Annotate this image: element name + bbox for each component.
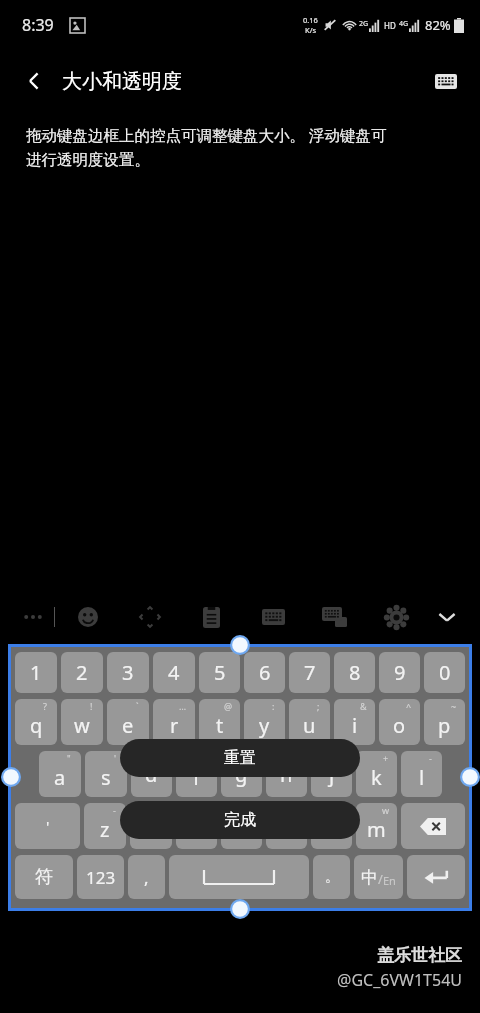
button[interactable]: …: [153, 699, 195, 745]
button[interactable]: 2: [61, 652, 103, 693]
staticText: 2G: [359, 19, 369, 29]
button[interactable]: Emoji: [67, 596, 109, 638]
button[interactable]: 符: [15, 855, 73, 899]
button[interactable]: ?: [15, 699, 57, 745]
button[interactable]: g: [221, 751, 262, 797]
button[interactable]: ^: [379, 699, 420, 745]
button[interactable]: -: [401, 751, 442, 797]
button[interactable]: -: [84, 803, 126, 849]
button[interactable]: Settings: [375, 596, 417, 638]
button[interactable]: 完成: [120, 801, 360, 839]
button[interactable]: ~: [424, 699, 465, 745]
staticText: 中: [361, 867, 378, 888]
button[interactable]: 0: [424, 652, 465, 693]
button[interactable]: Keyboard layout: [252, 596, 294, 638]
button[interactable]: Resize left: [1, 767, 21, 787]
button[interactable]: w: [356, 803, 397, 849]
button[interactable]: x: [130, 803, 172, 849]
button[interactable]: 3: [107, 652, 149, 693]
button[interactable]: _: [176, 751, 217, 797]
staticText: @GC_6VW1T54U: [337, 969, 462, 991]
button[interactable]: c: [176, 803, 217, 849]
staticText: 3: [122, 659, 134, 686]
staticText: ,: [144, 866, 149, 889]
button[interactable]: 6: [244, 652, 285, 693]
button[interactable]: Move keyboard: [129, 596, 171, 638]
button[interactable]: ': [85, 751, 127, 797]
staticText: 进行透明度设置。: [26, 150, 150, 170]
button[interactable]: [169, 855, 309, 899]
staticText: j: [329, 761, 335, 788]
button[interactable]: Hide keyboard: [426, 596, 468, 638]
staticText: 6: [259, 659, 271, 686]
button[interactable]: Clipboard: [190, 596, 232, 638]
staticText: y: [259, 712, 270, 739]
staticText: l: [419, 764, 425, 791]
staticText: 符: [35, 866, 53, 889]
staticText: ~: [451, 700, 457, 712]
staticText: ^: [406, 700, 412, 712]
staticText: 7: [304, 659, 316, 686]
staticText: ;: [317, 700, 320, 712]
staticText: f: [193, 764, 200, 791]
staticText: ?: [43, 700, 47, 712]
staticText: !: [90, 700, 93, 712]
staticText: 重置: [224, 748, 256, 768]
staticText: +: [383, 752, 389, 764]
button[interactable]: 4: [153, 652, 195, 693]
button[interactable]: 7: [289, 652, 330, 693]
button[interactable]: b: [266, 803, 307, 849]
button[interactable]: Floating keyboard: [313, 596, 355, 638]
button[interactable]: Resize right: [460, 767, 480, 787]
button[interactable]: Keyboard: [426, 61, 466, 101]
button[interactable]: [401, 803, 465, 849]
staticText: -: [113, 804, 116, 816]
button[interactable]: Back: [12, 59, 56, 103]
button[interactable]: 中: [354, 855, 403, 899]
button[interactable]: Resize bottom: [230, 899, 250, 919]
staticText: 大小和透明度: [62, 69, 182, 94]
button[interactable]: 重置: [120, 739, 360, 777]
button[interactable]: ': [15, 803, 80, 849]
staticText: 5: [214, 659, 226, 686]
button[interactable]: Resize top: [230, 635, 250, 655]
button[interactable]: 9: [379, 652, 420, 693]
button[interactable]: h: [266, 751, 307, 797]
staticText: ': [114, 752, 117, 764]
button[interactable]: [407, 855, 465, 899]
button[interactable]: 。: [313, 855, 350, 899]
button[interactable]: 5: [199, 652, 240, 693]
staticText: &: [360, 700, 367, 712]
button[interactable]: n: [311, 803, 352, 849]
staticText: r: [170, 712, 179, 739]
button[interactable]: 123: [77, 855, 124, 899]
button[interactable]: j: [311, 751, 352, 797]
button[interactable]: ": [39, 751, 81, 797]
staticText: a: [54, 764, 66, 791]
button[interactable]: v: [221, 803, 262, 849]
staticText: 4: [168, 659, 180, 686]
button[interactable]: !: [61, 699, 103, 745]
button[interactable]: &: [334, 699, 375, 745]
button[interactable]: ;: [289, 699, 330, 745]
button[interactable]: :: [244, 699, 285, 745]
staticText: 盖乐世社区: [377, 945, 462, 966]
button[interactable]: 1: [15, 652, 57, 693]
button[interactable]: More: [14, 598, 52, 636]
button[interactable]: +: [356, 751, 397, 797]
button[interactable]: d: [131, 751, 172, 797]
button[interactable]: 8: [334, 652, 375, 693]
staticText: @: [224, 700, 233, 712]
staticText: 8: [349, 659, 361, 686]
button[interactable]: ,: [128, 855, 165, 899]
staticText: v: [236, 813, 247, 840]
button[interactable]: `: [107, 699, 149, 745]
staticText: -: [429, 752, 432, 764]
staticText: :: [272, 700, 275, 712]
staticText: ": [67, 752, 71, 764]
staticText: q: [30, 712, 43, 739]
button[interactable]: @: [199, 699, 240, 745]
staticText: /: [378, 870, 383, 888]
staticText: z: [100, 816, 110, 843]
